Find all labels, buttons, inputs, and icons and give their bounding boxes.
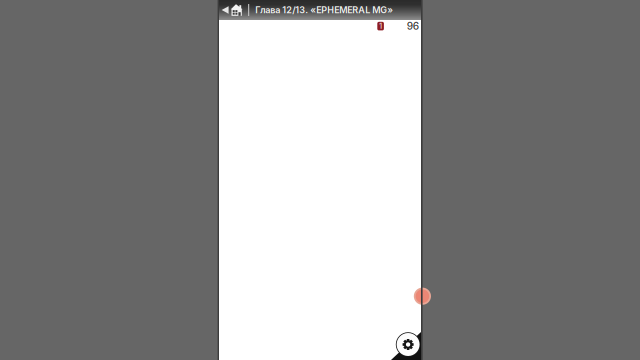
staticText: Глава 12/13. «EPHEMERAL MG» (255, 4, 393, 15)
staticText: 1 (379, 22, 382, 31)
button[interactable]: Back to library (219, 0, 248, 20)
staticText: 96 (407, 20, 419, 32)
button[interactable]: Settings (395, 331, 421, 357)
